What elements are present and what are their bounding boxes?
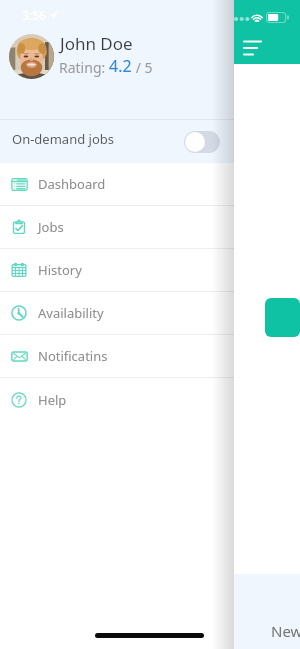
button[interactable]: Open navigation menu	[244, 40, 264, 56]
staticText: Jobs	[38, 218, 64, 236]
staticText: 3:56	[22, 7, 46, 23]
staticText: Rating:	[59, 58, 109, 77]
button[interactable]: Notificatins	[0, 335, 234, 378]
staticText: On-demand jobs	[12, 130, 114, 148]
staticText: / 5	[132, 58, 153, 77]
button[interactable]: On-demand jobs	[0, 115, 234, 163]
staticText: John Doe	[60, 32, 133, 55]
button[interactable]	[265, 298, 300, 337]
button[interactable]: New Message	[271, 621, 300, 641]
staticText: Dashboard	[38, 175, 106, 193]
staticText: History	[38, 261, 82, 279]
staticText: Help	[38, 391, 67, 409]
staticText: New Message	[271, 621, 300, 641]
staticText: 4.2	[109, 55, 132, 77]
button[interactable]: History	[0, 249, 234, 292]
button[interactable]: Help	[0, 378, 234, 421]
button[interactable]: Availability	[0, 292, 234, 335]
button[interactable]: Dashboard	[0, 163, 234, 206]
staticText: Notificatins	[38, 347, 108, 365]
staticText: Availability	[38, 304, 104, 322]
button[interactable]: Jobs	[0, 206, 234, 249]
